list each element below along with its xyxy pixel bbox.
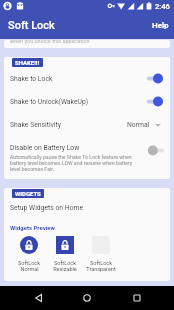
- button[interactable]: SoftLock: [11, 236, 47, 272]
- staticText: SoftLock: [18, 260, 40, 266]
- button[interactable]: Help: [147, 15, 174, 36]
- staticText: Resizable: [53, 266, 77, 272]
- staticText: Disable on Battery Low: [10, 144, 80, 152]
- staticText: Soft Lock: [8, 19, 55, 32]
- button[interactable]: Home: [75, 286, 99, 310]
- staticText: Shake Sensitivity: [10, 121, 61, 129]
- staticText: Normal: [20, 266, 39, 272]
- staticText: Help: [152, 21, 169, 30]
- staticText: WIDGETS: [15, 190, 41, 197]
- staticText: SoftLock: [90, 260, 112, 266]
- staticText: when you unlock this application: [10, 40, 90, 44]
- staticText: Widgets Preview: [10, 224, 55, 231]
- staticText: SoftLock: [54, 260, 76, 266]
- button[interactable]: Recents: [125, 286, 149, 310]
- button[interactable]: Setup Widgets on Home: [4, 198, 170, 218]
- button[interactable]: SoftLock: [47, 236, 83, 272]
- button[interactable]: Disable on Battery Low: [4, 136, 170, 172]
- staticText: Automatically pause the Shake To Lock fe…: [10, 154, 138, 172]
- button[interactable]: SoftLock: [83, 236, 119, 272]
- button[interactable]: Shake Sensitivity: [4, 113, 170, 136]
- staticText: Transparent: [86, 266, 116, 272]
- button[interactable]: Shake to Unlock(WakeUp): [4, 90, 170, 113]
- staticText: Shake to Unlock(WakeUp): [10, 98, 89, 106]
- staticText: Shake to Lock: [10, 75, 53, 83]
- staticText: 2:46: [155, 2, 170, 11]
- button[interactable]: Back: [26, 286, 50, 310]
- staticText: Normal: [127, 121, 150, 129]
- staticText: SHAKE!!!: [15, 59, 40, 66]
- button[interactable]: Shake to Lock: [4, 67, 170, 90]
- staticText: Setup Widgets on Home: [10, 204, 84, 212]
